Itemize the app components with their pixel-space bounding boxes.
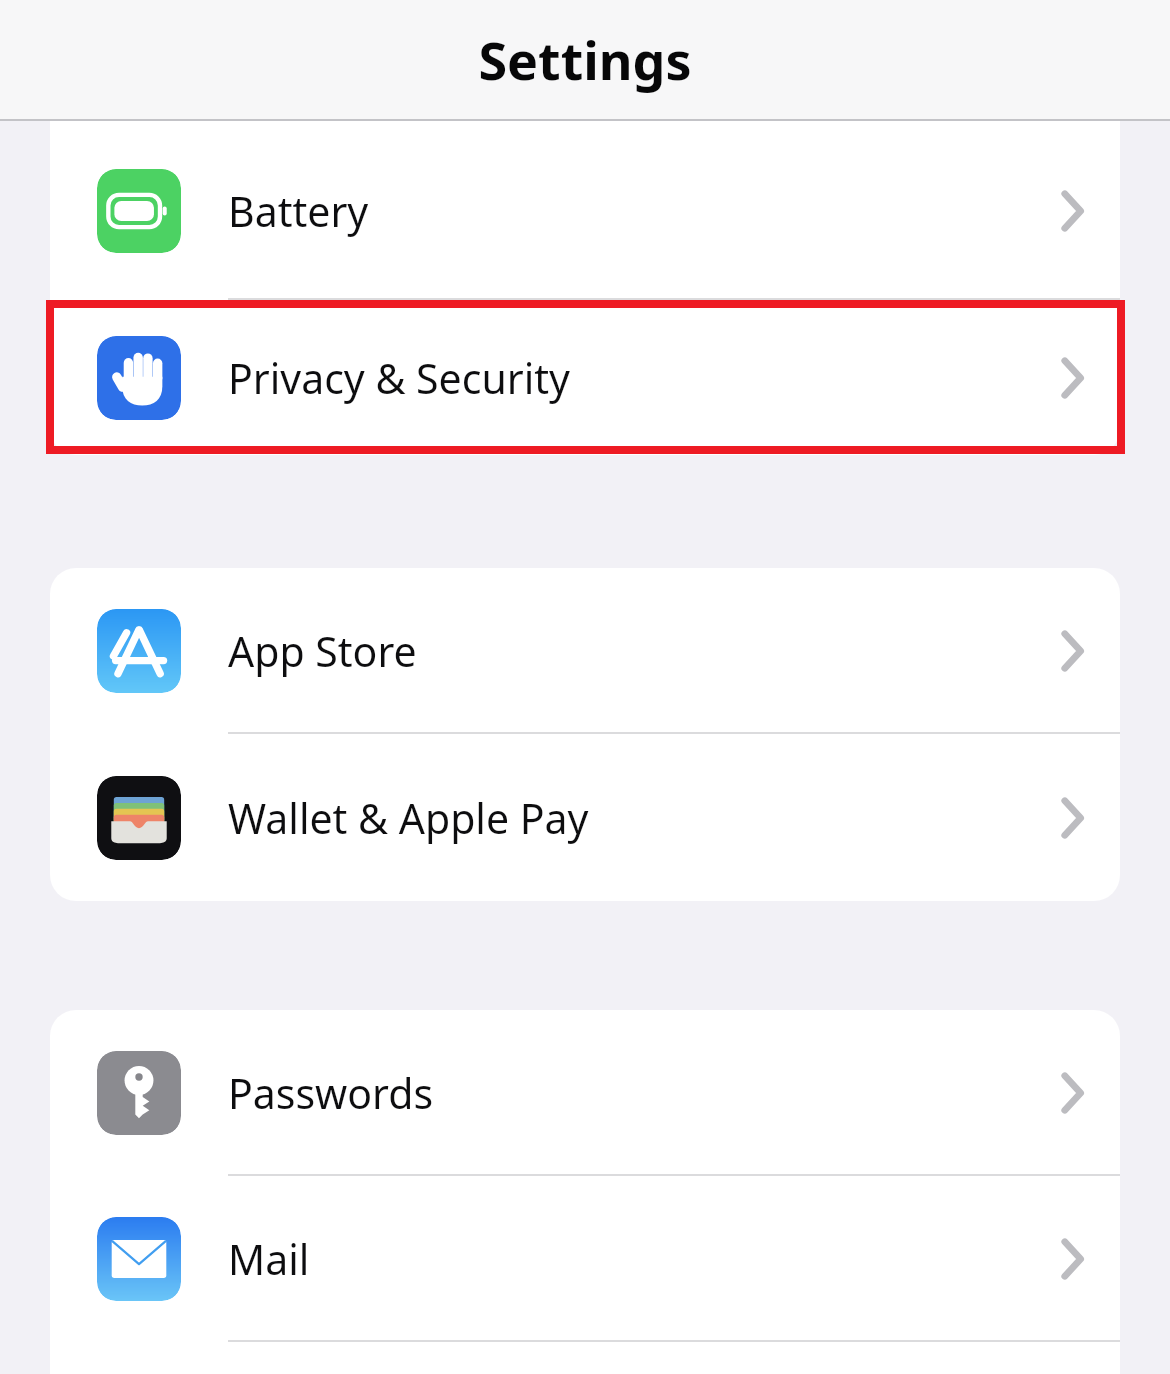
button[interactable]: Wallet & Apple Pay xyxy=(50,734,1120,901)
button[interactable]: Privacy & Security xyxy=(50,300,1120,455)
staticText: App Store xyxy=(228,623,417,679)
staticText: Passwords xyxy=(228,1065,434,1121)
button[interactable]: Battery xyxy=(50,121,1120,300)
button[interactable]: Mail xyxy=(50,1176,1120,1342)
staticText: Battery xyxy=(228,183,369,239)
staticText: Privacy & Security xyxy=(228,350,570,406)
staticText: Mail xyxy=(228,1231,310,1287)
button[interactable]: App Store xyxy=(50,568,1120,734)
staticText: Settings xyxy=(478,24,692,95)
button[interactable]: Passwords xyxy=(50,1010,1120,1176)
staticText: Wallet & Apple Pay xyxy=(228,790,589,846)
